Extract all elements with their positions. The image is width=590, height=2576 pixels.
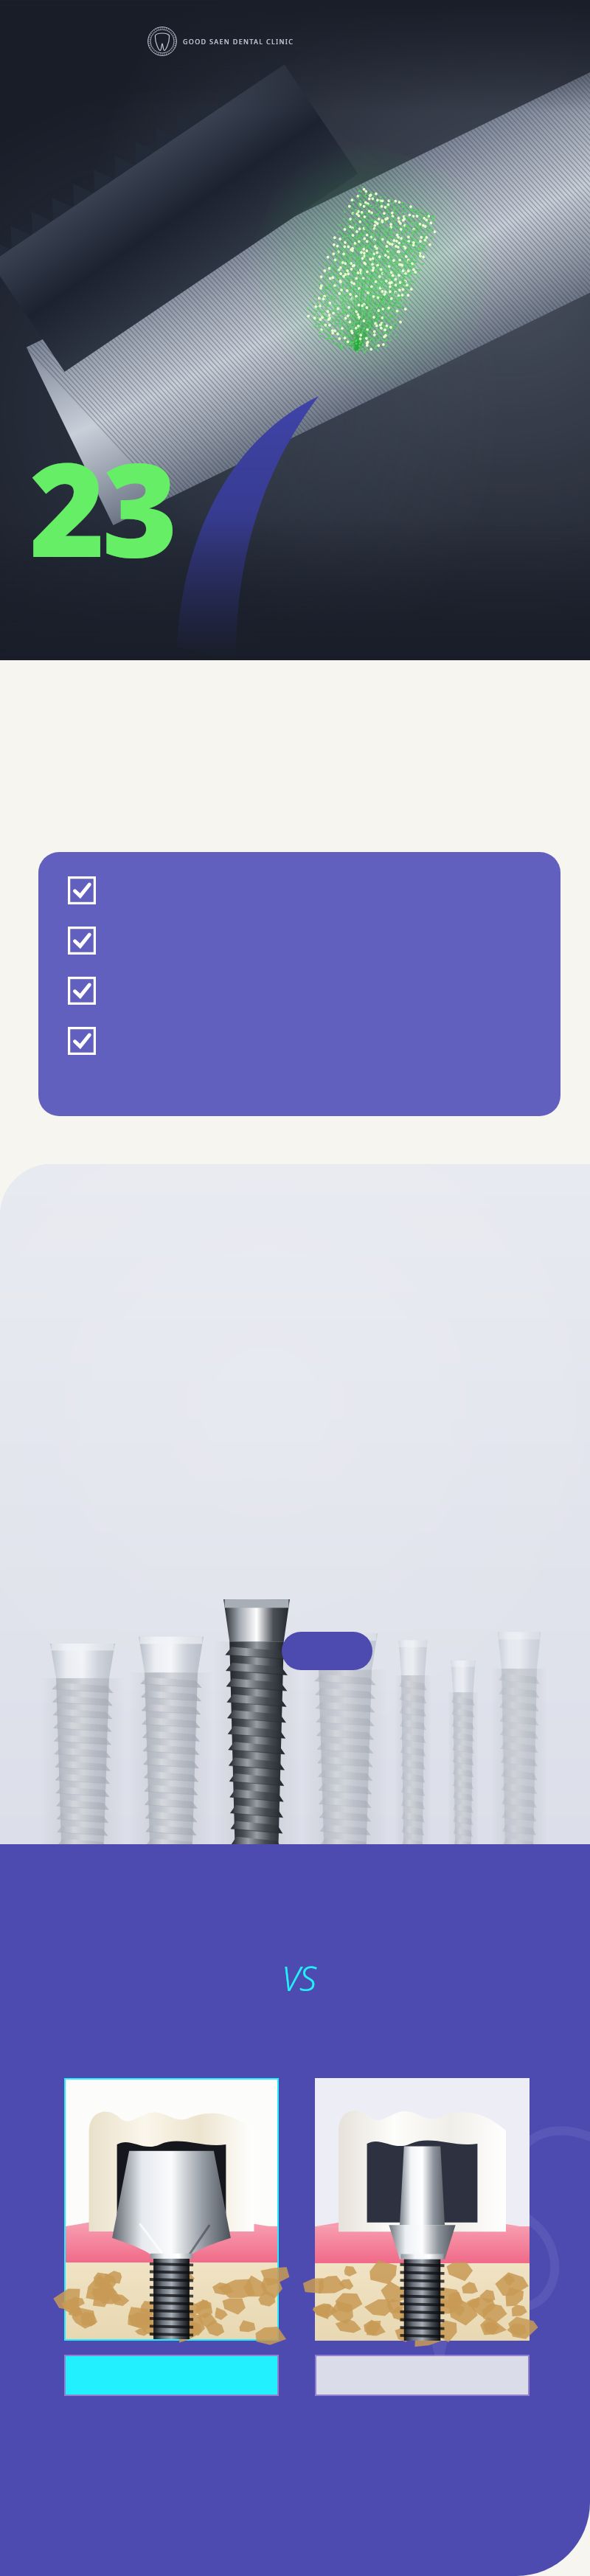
button[interactable]: Zirconia implant detail [315,2078,530,2396]
button[interactable]: Implant highlight [282,1632,372,1670]
button[interactable]: Conventional implant detail [64,2078,279,2396]
staticText: 23 [29,419,176,595]
button[interactable] [38,852,560,1116]
button[interactable]: Good Saen Dental Clinic logo [147,27,294,56]
staticText: VS [282,1955,316,2001]
staticText: GOOD SAEN DENTAL CLINIC [183,37,294,46]
